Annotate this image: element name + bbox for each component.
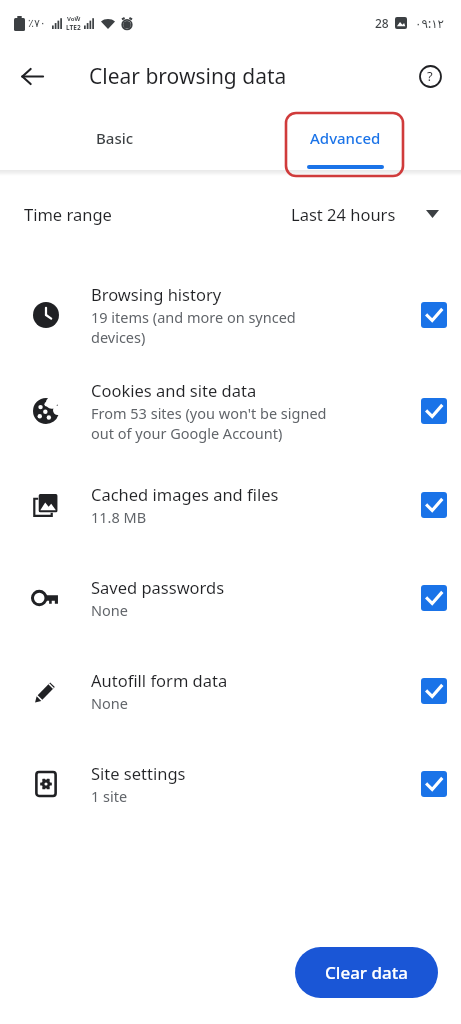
staticText: Clear data [325,961,408,984]
staticText: Browsing history [91,283,222,305]
staticText: Clear browsing data [89,62,287,91]
staticText: 1 site [91,786,128,806]
button[interactable]: Site settings [0,737,461,830]
button[interactable]: Basic [0,106,230,170]
staticText: None [91,600,128,620]
button[interactable]: Clear data [295,947,438,998]
button[interactable]: Help [409,55,451,97]
staticText: 28 [375,15,389,31]
staticText: ? [427,67,433,85]
staticText: Cached images and files [91,483,279,505]
button[interactable]: Autofill form data [0,644,461,737]
button[interactable]: Browsing history [0,266,461,364]
staticText: ٠٩:١٢ [415,15,445,31]
staticText: LTE2 [66,23,81,32]
staticText: Saved passwords [91,576,225,598]
button[interactable]: Cookies and site data checkbox [421,398,447,424]
staticText: Autofill form data [91,669,228,691]
button[interactable]: Saved passwords [0,551,461,644]
staticText: None [91,693,128,713]
button[interactable]: Autofill form data checkbox [421,678,447,704]
staticText: Advanced [310,128,381,148]
button[interactable]: Saved passwords checkbox [421,585,447,611]
button[interactable]: Site settings checkbox [421,771,447,797]
button[interactable]: Cached images and files checkbox [421,492,447,518]
staticText: ٪٧٠ [28,17,46,30]
button[interactable]: Browsing history checkbox [421,302,447,328]
staticText: 11.8 MB [91,507,147,527]
staticText: From 53 sites (you won't be signed out o… [91,403,327,443]
staticText: Basic [96,128,134,148]
staticText: 19 items (and more on synced devices) [91,307,296,347]
staticText: Site settings [91,762,186,784]
button[interactable]: Advanced [230,106,461,170]
button[interactable]: Cached images and files [0,458,461,551]
staticText: VoŴ [67,15,81,23]
button[interactable]: Back [10,54,54,98]
staticText: Cookies and site data [91,379,257,401]
button[interactable]: Cookies and site data [0,364,461,458]
button[interactable]: Time range [0,176,461,252]
staticText: Last 24 hours [291,203,396,225]
staticText: Time range [24,203,112,225]
